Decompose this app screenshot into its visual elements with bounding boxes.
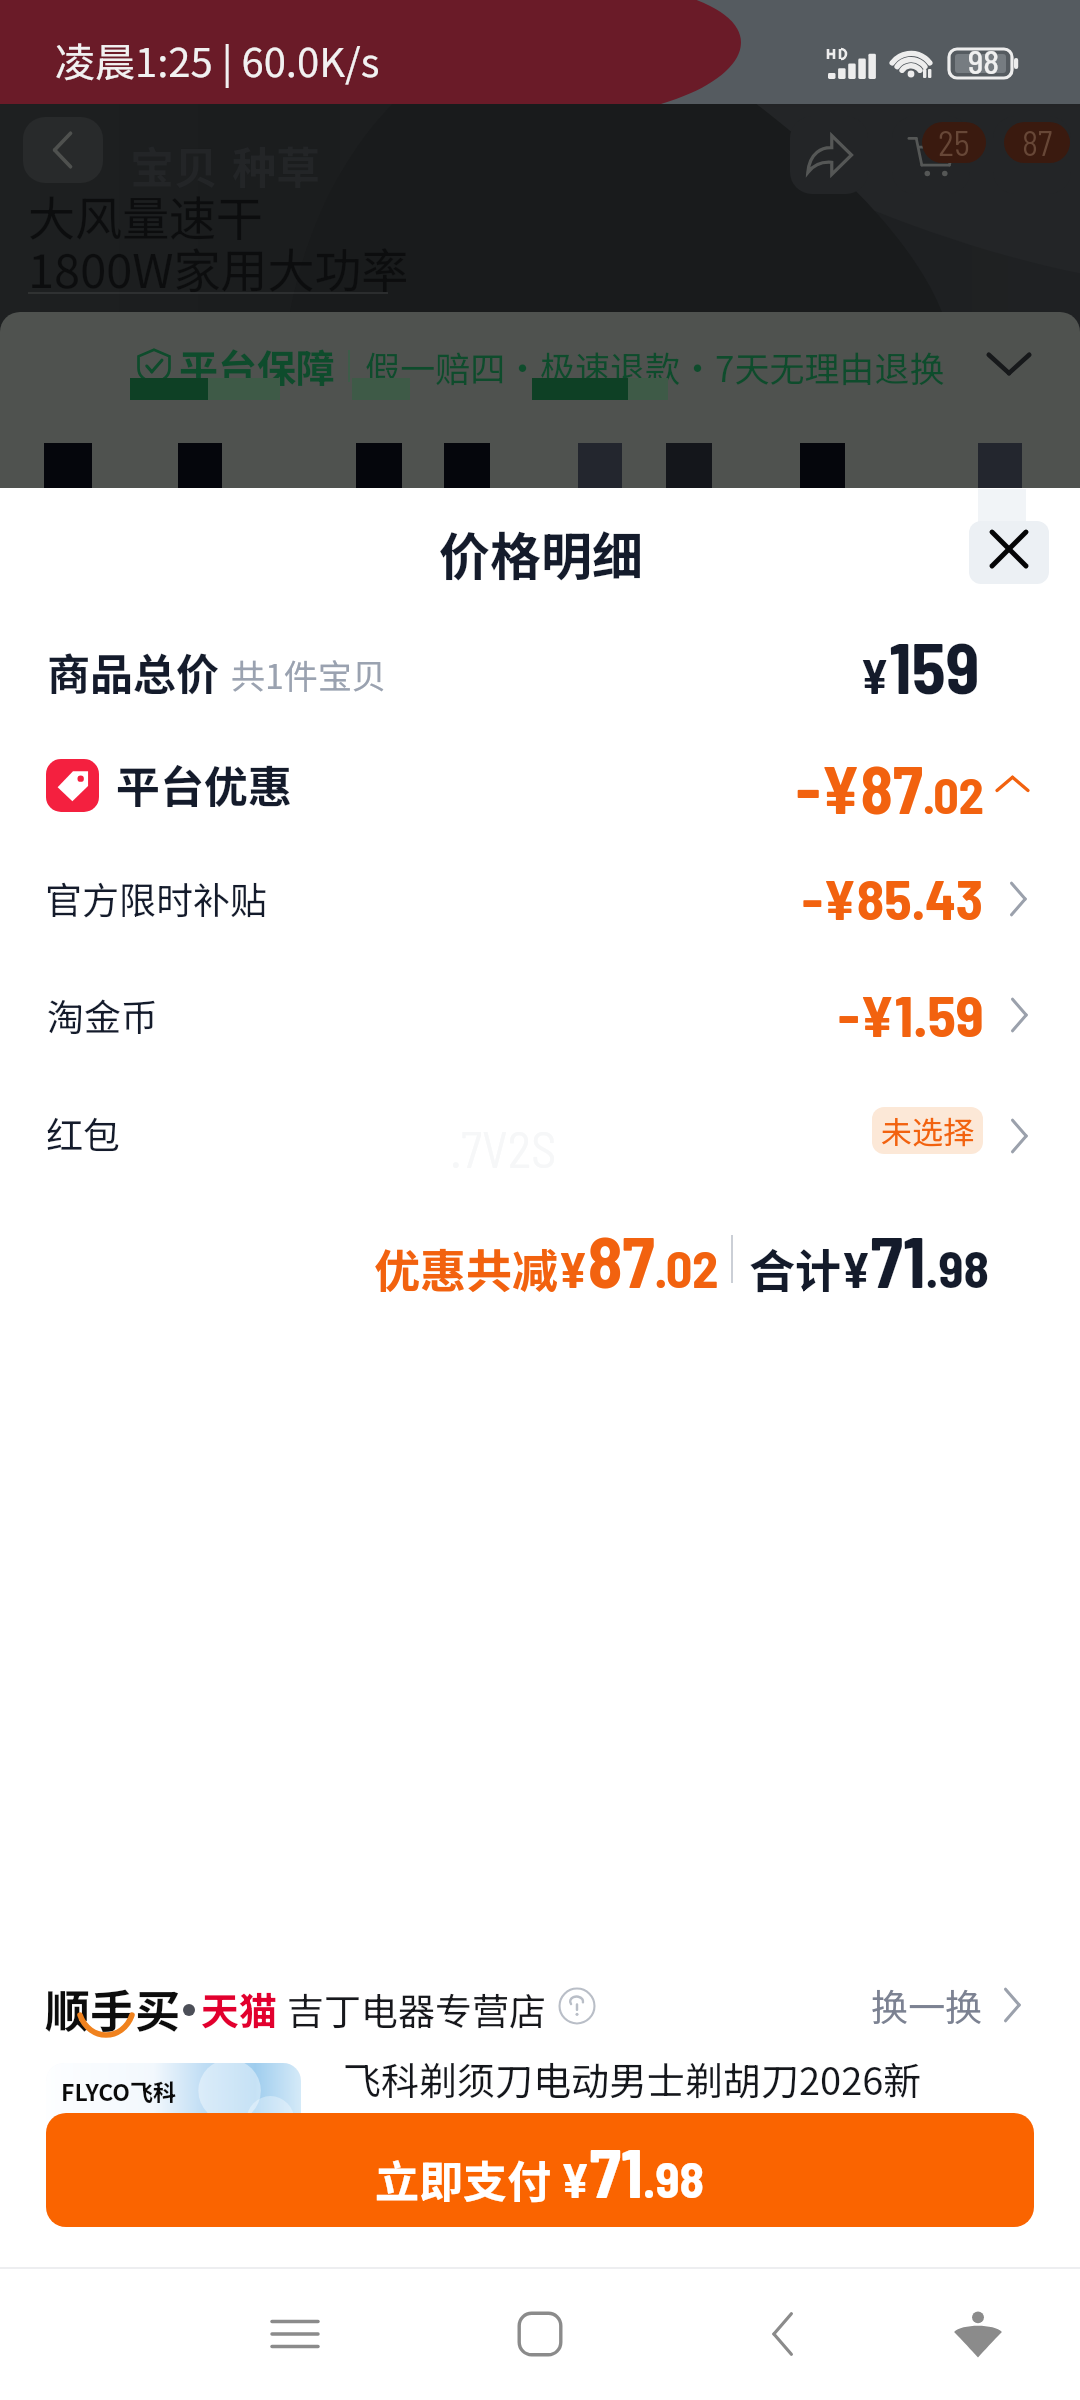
button[interactable]: 未选择 — [872, 1107, 983, 1154]
staticText: 宝贝 — [130, 133, 218, 197]
staticText: 优惠共减¥87.02 — [374, 1217, 719, 1302]
button[interactable] — [0, 843, 1080, 959]
button[interactable] — [0, 1953, 1080, 2037]
button[interactable]: Share — [790, 116, 868, 194]
staticText: 大风量速干 — [28, 181, 263, 249]
staticText: 假一赔四·极速退款·7天无理由退换 — [365, 341, 945, 392]
staticText: 凌晨1:25 | 60.0K/s — [55, 31, 380, 89]
staticText: 淘金币 — [47, 988, 158, 1042]
staticText: -¥85.43 — [802, 864, 984, 931]
button[interactable] — [0, 960, 1080, 1076]
staticText: 立即支付 ¥71.98 — [375, 2129, 705, 2212]
staticText: 合计¥71.98 — [749, 1217, 989, 1302]
staticText: 25 — [938, 122, 970, 163]
staticText: -¥87.02 — [796, 748, 984, 827]
staticText: 天猫 — [201, 1981, 278, 2036]
button[interactable]: Home — [483, 2277, 597, 2391]
staticText: 价格明细 — [439, 516, 644, 590]
staticText: ¥159 — [860, 624, 980, 708]
staticText: 飞科剃须刀电动男士剃胡刀2026新 — [343, 2051, 922, 2106]
staticText: .7V2S — [450, 1118, 557, 1178]
button[interactable]: Back — [727, 2277, 841, 2391]
button[interactable] — [0, 1078, 1080, 1194]
staticText: 种草 — [232, 133, 320, 197]
staticText: 吉丁电器专营店 — [287, 1982, 546, 2036]
staticText: 98 — [968, 41, 1000, 81]
button[interactable]: Messages — [993, 116, 1071, 194]
button[interactable]: Hide navigation bar — [921, 2277, 1035, 2391]
button[interactable] — [0, 727, 1080, 843]
staticText: 平台保障 — [179, 338, 336, 394]
staticText: 商品总价 — [47, 640, 219, 702]
staticText: 官方限时补贴 — [45, 871, 267, 925]
staticText: 87 — [1022, 122, 1053, 163]
staticText: 未选择 — [881, 1108, 974, 1153]
staticText: 1800W家用大功率 — [28, 233, 409, 301]
staticText: -¥1.59 — [838, 979, 984, 1049]
button[interactable]: Recent apps — [238, 2277, 352, 2391]
staticText: 共1件宝贝 — [231, 650, 386, 699]
button[interactable] — [0, 612, 1080, 728]
button[interactable]: Back — [23, 117, 103, 183]
staticText: 红包 — [46, 1106, 120, 1160]
staticText: 平台优惠 — [116, 752, 292, 816]
button[interactable] — [860, 1970, 1040, 2040]
button[interactable]: Shopping cart — [892, 116, 970, 194]
button[interactable]: 立即支付 ¥71.98 — [46, 2113, 1034, 2227]
button[interactable]: Close — [969, 521, 1049, 584]
button[interactable]: FLYCO飞科 — [46, 2063, 301, 2155]
staticText: 换一换 — [871, 1978, 982, 2032]
staticText: 顺手买 — [45, 1976, 181, 2041]
staticText: FLYCO飞科 — [61, 2074, 176, 2107]
